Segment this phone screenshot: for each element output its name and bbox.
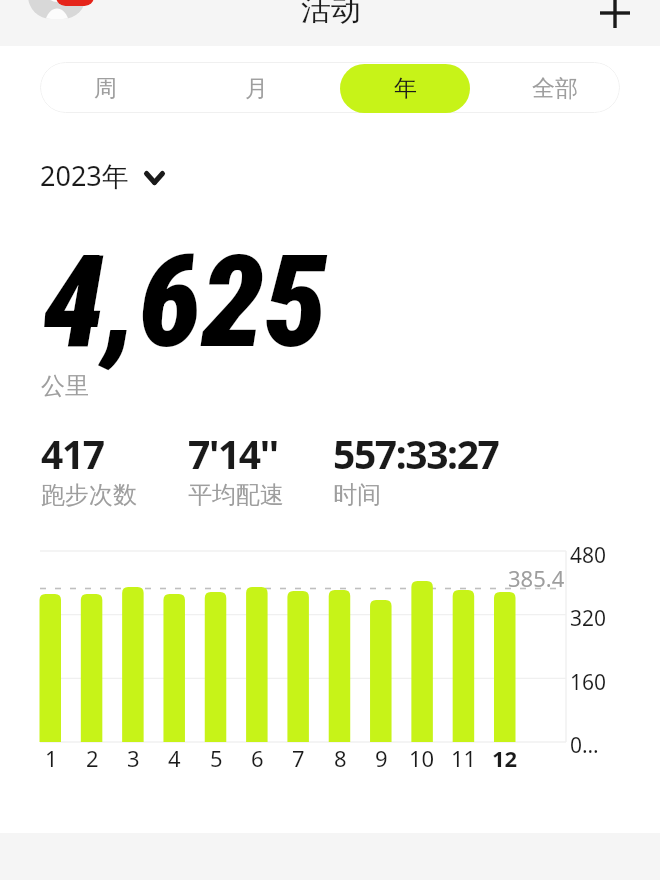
button[interactable]: 周 [40, 64, 170, 113]
staticText: 跑步次数 [41, 480, 137, 510]
staticText: 全部 [532, 74, 578, 103]
button[interactable]: 全部 [490, 64, 620, 113]
staticText: 4 [168, 743, 181, 773]
staticText: 417 [41, 427, 104, 480]
staticText: 时间 [333, 480, 381, 510]
staticText: 9 [375, 743, 388, 773]
staticText: 8 [334, 743, 347, 773]
button[interactable]: 月 [191, 64, 321, 113]
button[interactable]: Profile [28, 0, 86, 19]
staticText: 385.4 [508, 563, 565, 593]
staticText: 4,625 [42, 228, 328, 377]
staticText: 公里 [41, 371, 89, 401]
staticText: 周 [94, 74, 117, 103]
staticText: 3 [127, 743, 140, 773]
staticText: 557:33:27 [333, 427, 499, 480]
staticText: 160 [570, 668, 607, 697]
staticText: 12 [492, 743, 518, 773]
staticText: 平均配速 [188, 480, 284, 510]
button[interactable]: Add [592, 0, 637, 35]
staticText: 5 [210, 743, 223, 773]
button[interactable]: 年 [340, 64, 470, 113]
staticText: 7 [292, 743, 305, 773]
staticText: 320 [570, 604, 607, 633]
staticText: 年 [394, 74, 417, 103]
button[interactable]: 2023年 [40, 155, 165, 195]
staticText: 月 [245, 74, 268, 103]
staticText: 6 [251, 743, 264, 773]
staticText: 2 [86, 743, 99, 773]
staticText: 2023年 [40, 157, 129, 194]
staticText: 活动 [301, 0, 361, 29]
staticText: 7'14'' [188, 427, 278, 480]
staticText: 10 [409, 743, 435, 773]
staticText: 11 [451, 743, 477, 773]
staticText: 0… [570, 731, 599, 760]
staticText: 1 [45, 743, 58, 773]
staticText: 480 [570, 541, 607, 570]
